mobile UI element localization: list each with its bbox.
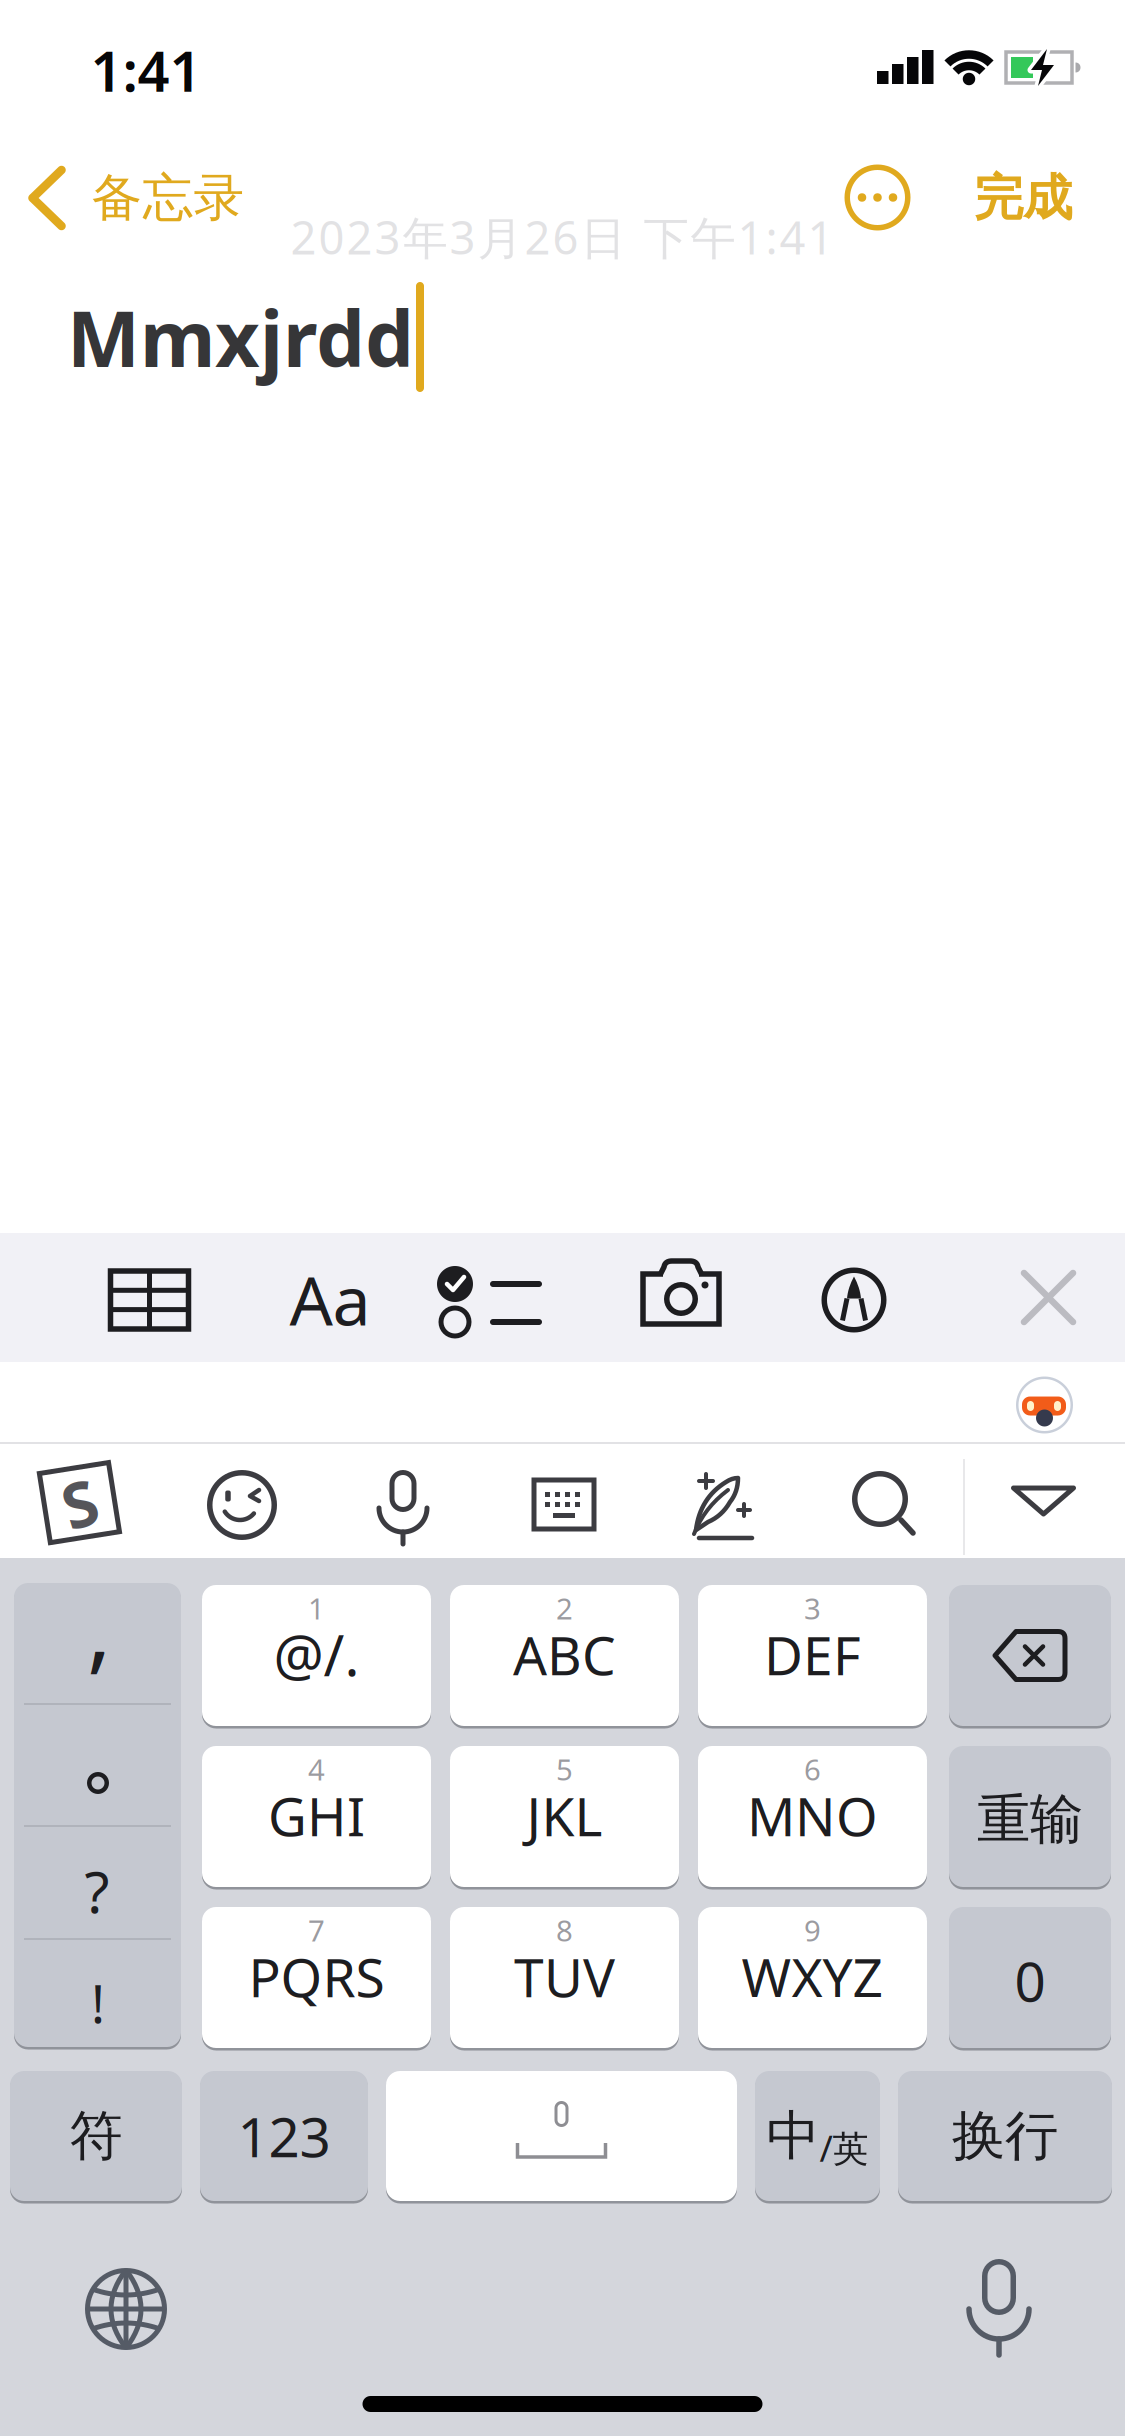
staticText: 1:41 — [90, 33, 201, 107]
button[interactable]: Insert table — [104, 1260, 194, 1340]
staticText: 中 — [766, 2103, 819, 2169]
staticText: @/. — [273, 1617, 359, 1692]
staticText: 重输 — [977, 1787, 1083, 1852]
staticText: 9 — [804, 1910, 821, 1949]
button[interactable]: Markup — [814, 1260, 894, 1340]
staticText: 备忘录 — [91, 167, 244, 229]
button[interactable]: 9 — [698, 1907, 927, 2048]
staticText: 2 — [556, 1588, 573, 1627]
staticText: MNO — [747, 1780, 878, 1851]
button[interactable]: 7 — [202, 1907, 431, 2048]
button[interactable]: 2 — [450, 1585, 679, 1726]
staticText: 1 — [308, 1588, 325, 1627]
staticText: 3 — [804, 1588, 821, 1627]
button[interactable]: Dismiss keyboard — [1016, 1265, 1081, 1330]
staticText: TUV — [514, 1941, 615, 2012]
button[interactable]: 5 — [450, 1746, 679, 1887]
staticText: 7 — [308, 1910, 325, 1949]
button[interactable]: Chinese / English — [755, 2071, 880, 2201]
button[interactable]: Symbols — [10, 2071, 182, 2201]
button[interactable]: 完成 — [974, 168, 1072, 228]
button[interactable]: Delete — [949, 1585, 1111, 1726]
button[interactable]: 0 — [949, 1907, 1111, 2048]
staticText: GHI — [268, 1780, 365, 1851]
button[interactable]: Camera — [638, 1259, 728, 1339]
staticText: /英 — [819, 2124, 868, 2172]
staticText: DEF — [764, 1619, 861, 1690]
button[interactable]: Dictation — [967, 2257, 1031, 2361]
button[interactable]: 3 — [698, 1585, 927, 1726]
staticText: JKL — [526, 1780, 602, 1851]
button[interactable]: Sogou assistant — [1014, 1371, 1074, 1437]
staticText: S — [62, 1461, 97, 1545]
staticText: 2023年3月26日 下午1:41 — [290, 207, 833, 267]
staticText: 6 — [804, 1749, 821, 1788]
button[interactable]: Checklist — [431, 1263, 541, 1343]
button[interactable]: Handwriting — [682, 1468, 762, 1538]
staticText: ABC — [513, 1619, 616, 1690]
staticText: WXYZ — [741, 1941, 883, 2012]
staticText: , — [87, 1567, 111, 1687]
button[interactable]: Search — [849, 1470, 919, 1540]
staticText: Mmxjrdd — [67, 286, 414, 388]
button[interactable]: Voice input — [373, 1468, 433, 1548]
button[interactable]: 重输 — [949, 1746, 1111, 1887]
staticText: 符 — [69, 2103, 122, 2169]
button[interactable]: 8 — [450, 1907, 679, 2048]
staticText: 8 — [556, 1910, 573, 1949]
staticText: 123 — [237, 2100, 330, 2172]
button[interactable]: Next keyboard — [83, 2266, 169, 2352]
button[interactable]: 1 — [202, 1585, 431, 1726]
button[interactable]: 4 — [202, 1746, 431, 1887]
staticText: 0 — [1014, 1944, 1045, 2017]
button[interactable]: Sogou — [37, 1460, 122, 1545]
staticText: 换行 — [952, 2103, 1058, 2169]
staticText: Aa — [289, 1254, 370, 1344]
button[interactable]: More — [844, 164, 910, 230]
staticText: PQRS — [248, 1941, 384, 2012]
button[interactable]: Return — [898, 2071, 1112, 2201]
button[interactable]: 备忘录 — [27, 167, 244, 229]
button[interactable]: Space — [386, 2071, 737, 2201]
button[interactable]: 6 — [698, 1746, 927, 1887]
button[interactable]: Text format — [289, 1254, 370, 1344]
staticText: ? — [84, 1853, 109, 1929]
staticText: ! — [91, 1968, 105, 2038]
staticText: 完成 — [974, 168, 1072, 228]
button[interactable]: Emoji — [207, 1470, 277, 1540]
button[interactable]: Keyboard layout — [529, 1475, 599, 1535]
staticText: 4 — [308, 1749, 325, 1788]
button[interactable]: Numbers — [200, 2071, 368, 2201]
staticText: 5 — [556, 1749, 573, 1788]
button[interactable]: Punctuation — [14, 1583, 181, 2047]
button[interactable]: Hide keyboard — [1009, 1484, 1079, 1524]
